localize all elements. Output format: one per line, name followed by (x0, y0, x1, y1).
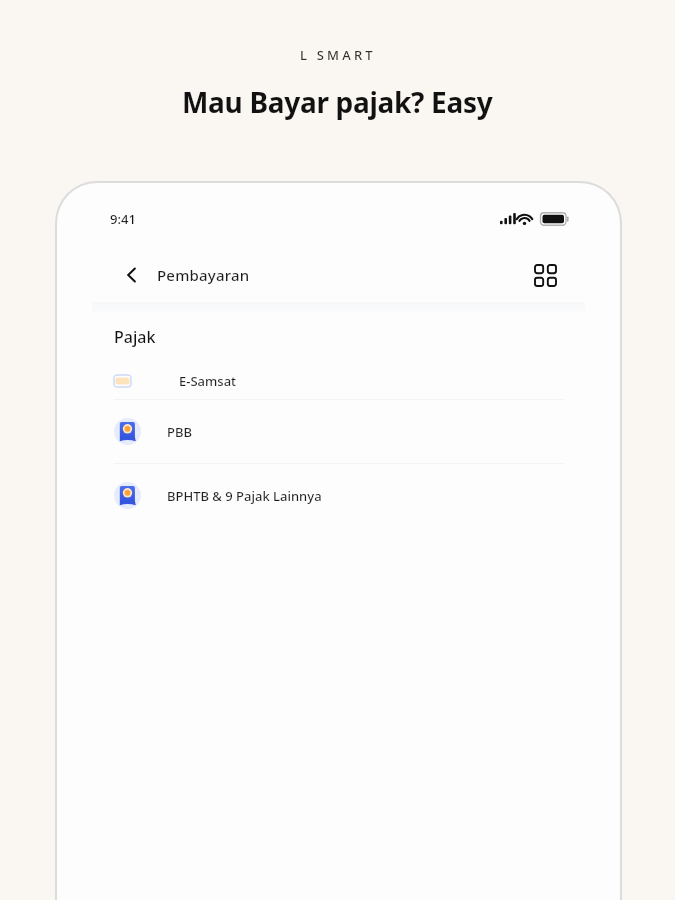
staticText: PBB (167, 423, 192, 441)
button[interactable]: PBB (57, 400, 620, 463)
staticText: BPHTB & 9 Pajak Lainnya (167, 487, 322, 505)
staticText: Pajak (114, 326, 156, 348)
staticText: E-Samsat (179, 372, 237, 390)
staticText: L SMART (300, 46, 376, 64)
button[interactable]: All services (528, 258, 562, 292)
button[interactable]: Back (115, 258, 149, 292)
staticText: Mau Bayar pajak? Easy (182, 83, 493, 121)
button[interactable]: BPHTB & 9 Pajak Lainnya (57, 464, 620, 527)
button[interactable]: E-Samsat (57, 362, 620, 399)
staticText: 9:41 (110, 210, 136, 228)
staticText: Pembayaran (157, 265, 250, 285)
